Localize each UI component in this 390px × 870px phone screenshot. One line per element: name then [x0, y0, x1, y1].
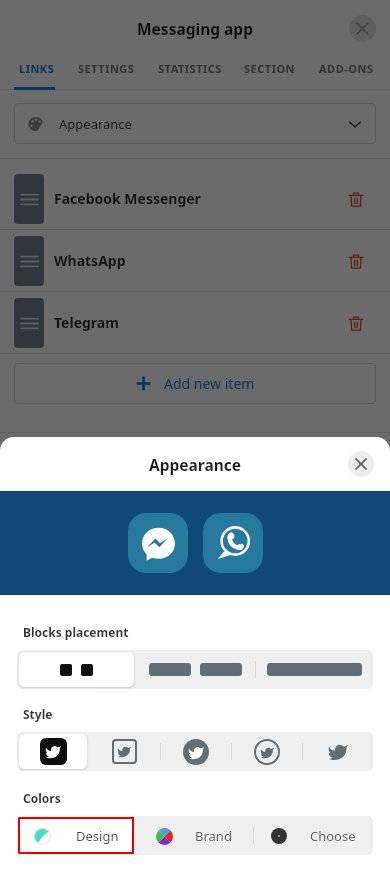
- staticText: Messaging app: [137, 18, 253, 39]
- staticText: Add new item: [164, 374, 255, 393]
- button[interactable]: [19, 652, 134, 687]
- button[interactable]: Close: [349, 15, 376, 42]
- button[interactable]: LINKS: [19, 56, 55, 80]
- button[interactable]: Design: [18, 817, 134, 854]
- staticText: Telegram: [54, 313, 119, 332]
- staticText: ADD-ONS: [319, 61, 374, 76]
- button[interactable]: Outlined circle style: [232, 732, 302, 771]
- staticText: LINKS: [19, 61, 55, 76]
- button[interactable]: STATISTICS: [158, 56, 222, 80]
- button[interactable]: Appearance: [14, 103, 376, 144]
- staticText: Choose: [310, 827, 356, 845]
- staticText: Appearance: [59, 115, 132, 133]
- button[interactable]: Facebook Messenger: [0, 168, 390, 229]
- button[interactable]: Delete: [344, 187, 368, 211]
- button[interactable]: [19, 734, 87, 769]
- staticText: Colors: [23, 790, 61, 806]
- staticText: SETTINGS: [78, 61, 135, 76]
- staticText: Facebook Messenger: [54, 189, 201, 208]
- staticText: Brand: [195, 827, 232, 845]
- button[interactable]: [256, 650, 373, 689]
- button[interactable]: Plain style: [303, 732, 373, 771]
- button[interactable]: Add new item: [14, 363, 376, 404]
- button[interactable]: Outlined square style: [89, 732, 160, 771]
- button[interactable]: Brand: [135, 816, 253, 855]
- button[interactable]: Close: [348, 451, 374, 477]
- button[interactable]: [136, 650, 255, 689]
- button[interactable]: SETTINGS: [78, 56, 135, 80]
- staticText: WhatsApp: [54, 251, 126, 270]
- button[interactable]: Delete: [344, 311, 368, 335]
- button[interactable]: Telegram: [0, 292, 390, 353]
- staticText: Design: [76, 827, 119, 845]
- button[interactable]: Delete: [344, 249, 368, 273]
- staticText: Appearance: [149, 454, 242, 475]
- button[interactable]: ADD-ONS: [319, 56, 374, 80]
- button[interactable]: WhatsApp: [0, 230, 390, 291]
- staticText: Blocks placement: [23, 624, 129, 640]
- staticText: Style: [23, 706, 53, 722]
- button[interactable]: WhatsApp: [203, 513, 263, 573]
- button[interactable]: Facebook Messenger: [128, 513, 188, 573]
- button[interactable]: Choose: [254, 816, 373, 855]
- staticText: SECTION: [244, 61, 296, 76]
- staticText: STATISTICS: [158, 61, 222, 76]
- button[interactable]: SECTION: [244, 56, 296, 80]
- button[interactable]: Filled circle style: [161, 732, 231, 771]
